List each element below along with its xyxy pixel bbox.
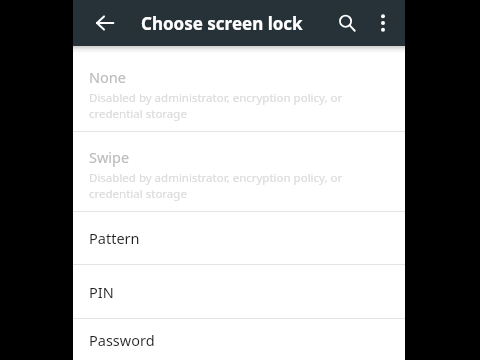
button[interactable]: More options [369,0,397,46]
staticText: Swipe [89,147,130,167]
staticText: None [89,67,126,87]
staticText: Pattern [89,228,140,248]
button[interactable]: Pattern [73,212,405,264]
button[interactable]: None [73,53,405,131]
button[interactable]: Swipe [73,132,405,211]
button[interactable]: Navigate up [89,0,121,46]
button[interactable]: Search [331,0,363,46]
staticText: Password [89,330,155,350]
staticText: Disabled by administrator, encryption po… [89,90,343,121]
staticText: Disabled by administrator, encryption po… [89,170,343,201]
staticText: Choose screen lock [141,12,303,35]
staticText: PIN [89,282,114,302]
button[interactable]: Password [73,319,405,360]
button[interactable]: PIN [73,265,405,318]
